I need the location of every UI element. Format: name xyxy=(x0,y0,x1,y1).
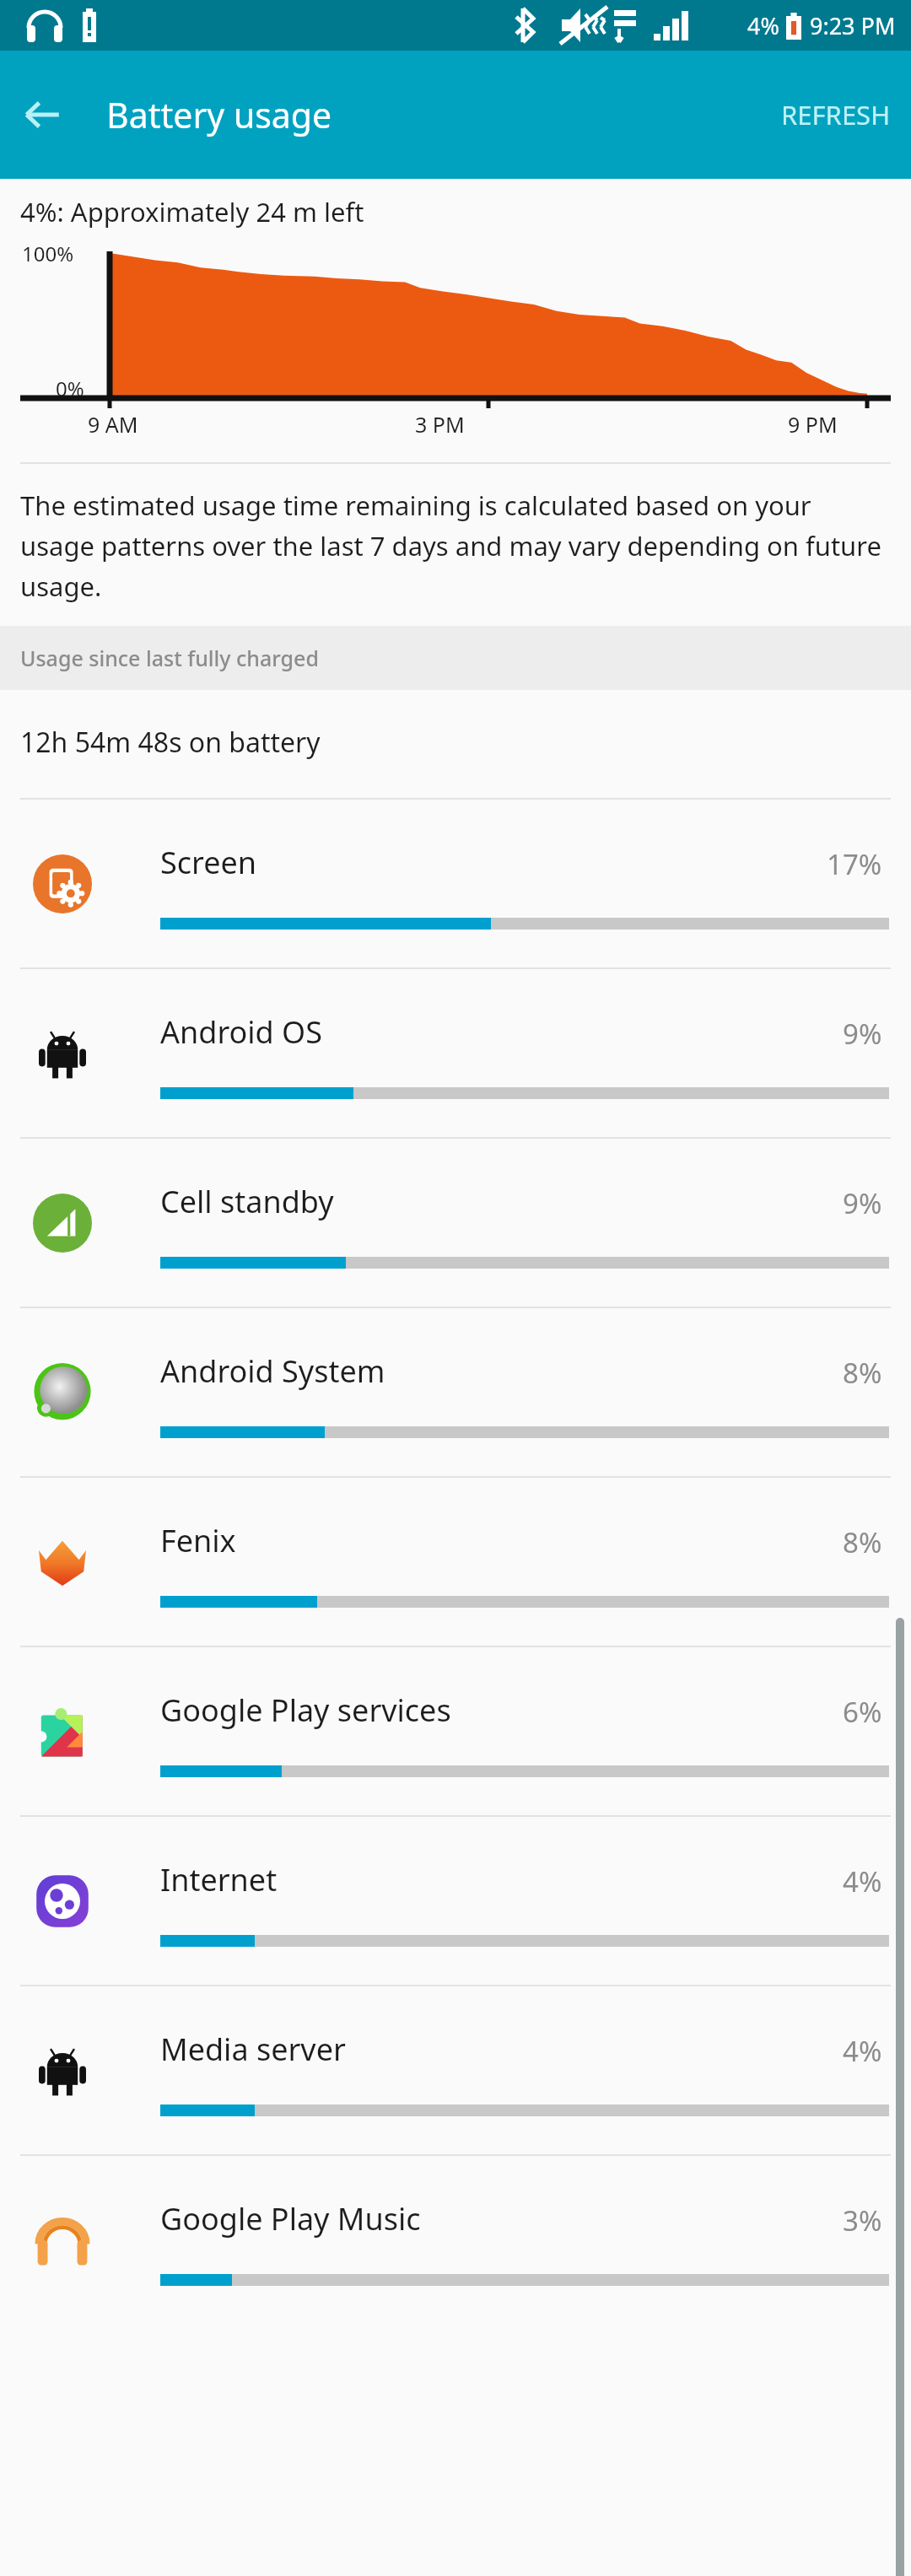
button[interactable]: Internet xyxy=(0,1815,911,1985)
staticText: Google Play Music xyxy=(160,2198,421,2239)
button[interactable]: Media server xyxy=(0,1985,911,2154)
button[interactable]: Android System xyxy=(0,1307,911,1476)
staticText: The estimated usage time remaining is ca… xyxy=(20,488,891,604)
staticText: Cell standby xyxy=(160,1181,334,1222)
staticText: Media server xyxy=(160,2029,346,2070)
staticText: 8% xyxy=(843,1354,882,1392)
staticText: 9% xyxy=(843,1184,882,1222)
staticText: 9% xyxy=(843,1015,882,1053)
staticText: 4% xyxy=(747,10,779,41)
staticText: Android OS xyxy=(160,1011,322,1053)
button[interactable]: Fenix xyxy=(0,1476,911,1646)
staticText: Usage since last fully charged xyxy=(20,644,319,672)
staticText: Battery usage xyxy=(106,91,332,138)
staticText: 4%: Approximately 24 m left xyxy=(20,194,364,229)
staticText: 3 PM xyxy=(415,410,465,439)
staticText: 0% xyxy=(56,375,84,402)
staticText: 4% xyxy=(843,2032,882,2070)
button[interactable]: Google Play services xyxy=(0,1646,911,1815)
staticText: 9:23 PM xyxy=(810,10,896,41)
staticText: Screen xyxy=(160,842,257,883)
button[interactable]: Cell standby xyxy=(0,1137,911,1307)
staticText: 6% xyxy=(843,1693,882,1731)
button[interactable]: REFRESH xyxy=(761,80,911,149)
staticText: 100% xyxy=(22,240,74,267)
button[interactable]: Android OS xyxy=(0,967,911,1137)
staticText: REFRESH xyxy=(781,97,891,132)
button[interactable]: Back xyxy=(15,88,69,142)
staticText: Android System xyxy=(160,1350,385,1392)
staticText: 17% xyxy=(827,845,882,883)
staticText: 8% xyxy=(843,1523,882,1561)
staticText: 9 PM xyxy=(788,410,838,439)
staticText: 12h 54m 48s on battery xyxy=(20,724,321,761)
staticText: Google Play services xyxy=(160,1689,451,1731)
button[interactable]: Screen xyxy=(0,798,911,967)
staticText: 4% xyxy=(843,1862,882,1900)
staticText: 9 AM xyxy=(88,410,138,439)
button[interactable]: Google Play Music xyxy=(0,2154,911,2324)
staticText: Fenix xyxy=(160,1520,236,1561)
staticText: 3% xyxy=(843,2201,882,2239)
staticText: Internet xyxy=(160,1859,278,1900)
